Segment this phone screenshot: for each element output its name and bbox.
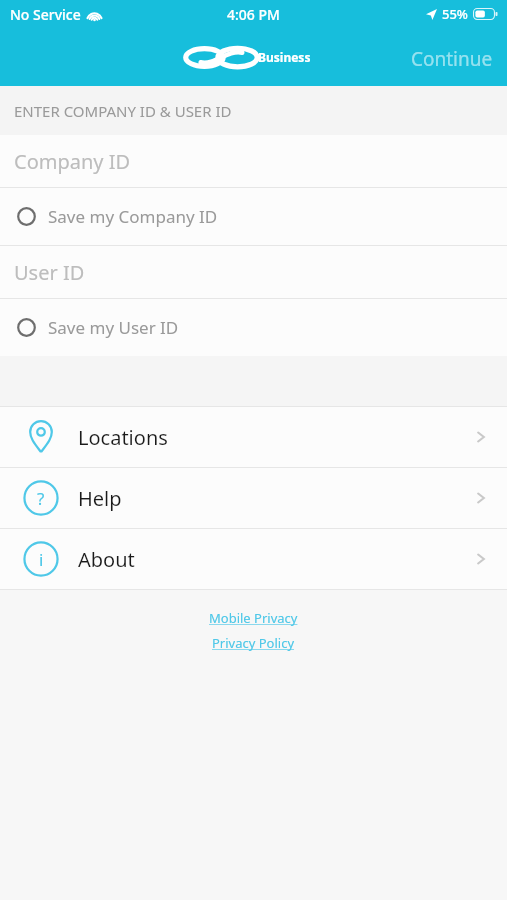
staticText: Locations (78, 424, 168, 451)
button[interactable]: Save my Company ID (0, 188, 507, 245)
staticText: Business (258, 49, 311, 65)
button[interactable]: User ID (0, 246, 507, 298)
button[interactable]: Company ID (0, 135, 507, 187)
button[interactable]: Privacy Policy (208, 632, 299, 654)
staticText: Help (78, 485, 122, 512)
staticText: Privacy Policy (212, 634, 295, 652)
button[interactable]: ? (0, 468, 507, 528)
staticText: ENTER COMPANY ID & USER ID (14, 101, 232, 121)
staticText: About (78, 546, 135, 573)
button[interactable]: Continue (397, 42, 507, 76)
staticText: i (39, 548, 44, 571)
button[interactable]: Mobile Privacy (205, 607, 302, 629)
staticText: Mobile Privacy (209, 609, 298, 627)
staticText: 4:06 PM (227, 5, 280, 24)
button[interactable]: i (0, 529, 507, 589)
staticText: User ID (14, 259, 85, 286)
staticText: ? (37, 487, 45, 510)
button[interactable]: Save my User ID (0, 299, 507, 356)
staticText: 55% (442, 5, 468, 23)
staticText: Continue (411, 46, 493, 72)
button[interactable]: Locations (0, 407, 507, 467)
staticText: Save my Company ID (48, 205, 218, 228)
staticText: Save my User ID (48, 316, 179, 339)
staticText: No Service (10, 5, 81, 24)
staticText: Company ID (14, 148, 131, 175)
